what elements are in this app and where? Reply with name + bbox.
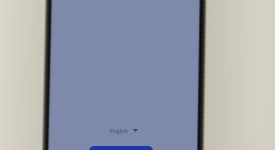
button[interactable]: English: [110, 127, 138, 134]
button[interactable]: Start: [89, 146, 153, 150]
staticText: English: [110, 127, 129, 134]
